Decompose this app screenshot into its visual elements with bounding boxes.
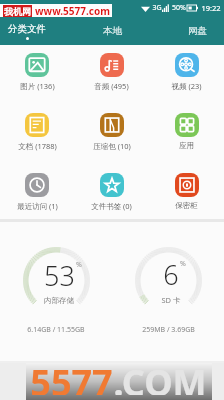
staticText: www.5577.com — [35, 4, 110, 17]
staticText: 分类文件 — [8, 23, 46, 35]
button[interactable]: 文件书签 (0) — [74, 165, 149, 219]
staticText: 5577 — [30, 358, 113, 395]
staticText: 内部存储 — [44, 296, 74, 305]
staticText: 最近访问 (1) — [17, 201, 58, 211]
staticText: 图片 (136) — [20, 81, 55, 91]
button[interactable]: 本地 — [54, 17, 170, 45]
staticText: 50% — [172, 3, 186, 13]
button[interactable]: 网盘 — [170, 17, 224, 45]
button[interactable]: 视频 (23) — [149, 45, 224, 105]
staticText: SD 卡 — [161, 295, 181, 305]
staticText: 6 — [163, 256, 179, 293]
staticText: 保密柜 — [175, 201, 198, 210]
staticText: 视频 (23) — [171, 81, 202, 91]
staticText: % — [180, 259, 186, 269]
button[interactable]: 分类文件 — [0, 17, 54, 45]
staticText: 本地 — [103, 25, 122, 37]
button[interactable]: 53 — [0, 222, 112, 361]
staticText: 19:22 — [201, 3, 221, 13]
button[interactable]: 应用 — [149, 105, 224, 165]
button[interactable]: 最近访问 (1) — [0, 165, 74, 219]
staticText: % — [76, 260, 82, 270]
button[interactable]: 6 — [112, 222, 224, 361]
button[interactable]: 图片 (136) — [0, 45, 74, 105]
staticText: 网盘 — [188, 25, 207, 37]
staticText: 53 — [44, 257, 75, 294]
staticText: 我机网 — [4, 6, 31, 17]
staticText: 文档 (1788) — [18, 141, 57, 151]
staticText: 应用 — [179, 141, 194, 150]
staticText: .COM — [113, 358, 207, 395]
button[interactable]: 文档 (1788) — [0, 105, 74, 165]
staticText: 6.14GB / 11.55GB — [27, 325, 85, 335]
staticText: 音频 (495) — [94, 81, 129, 91]
staticText: 259MB / 3.69GB — [142, 325, 195, 335]
button[interactable]: 保密柜 — [149, 165, 224, 219]
staticText: 3G — [152, 3, 162, 13]
staticText: 压缩包 (10) — [93, 141, 131, 151]
button[interactable]: 压缩包 (10) — [74, 105, 149, 165]
staticText: 文件书签 (0) — [91, 201, 132, 211]
button[interactable]: 音频 (495) — [74, 45, 149, 105]
